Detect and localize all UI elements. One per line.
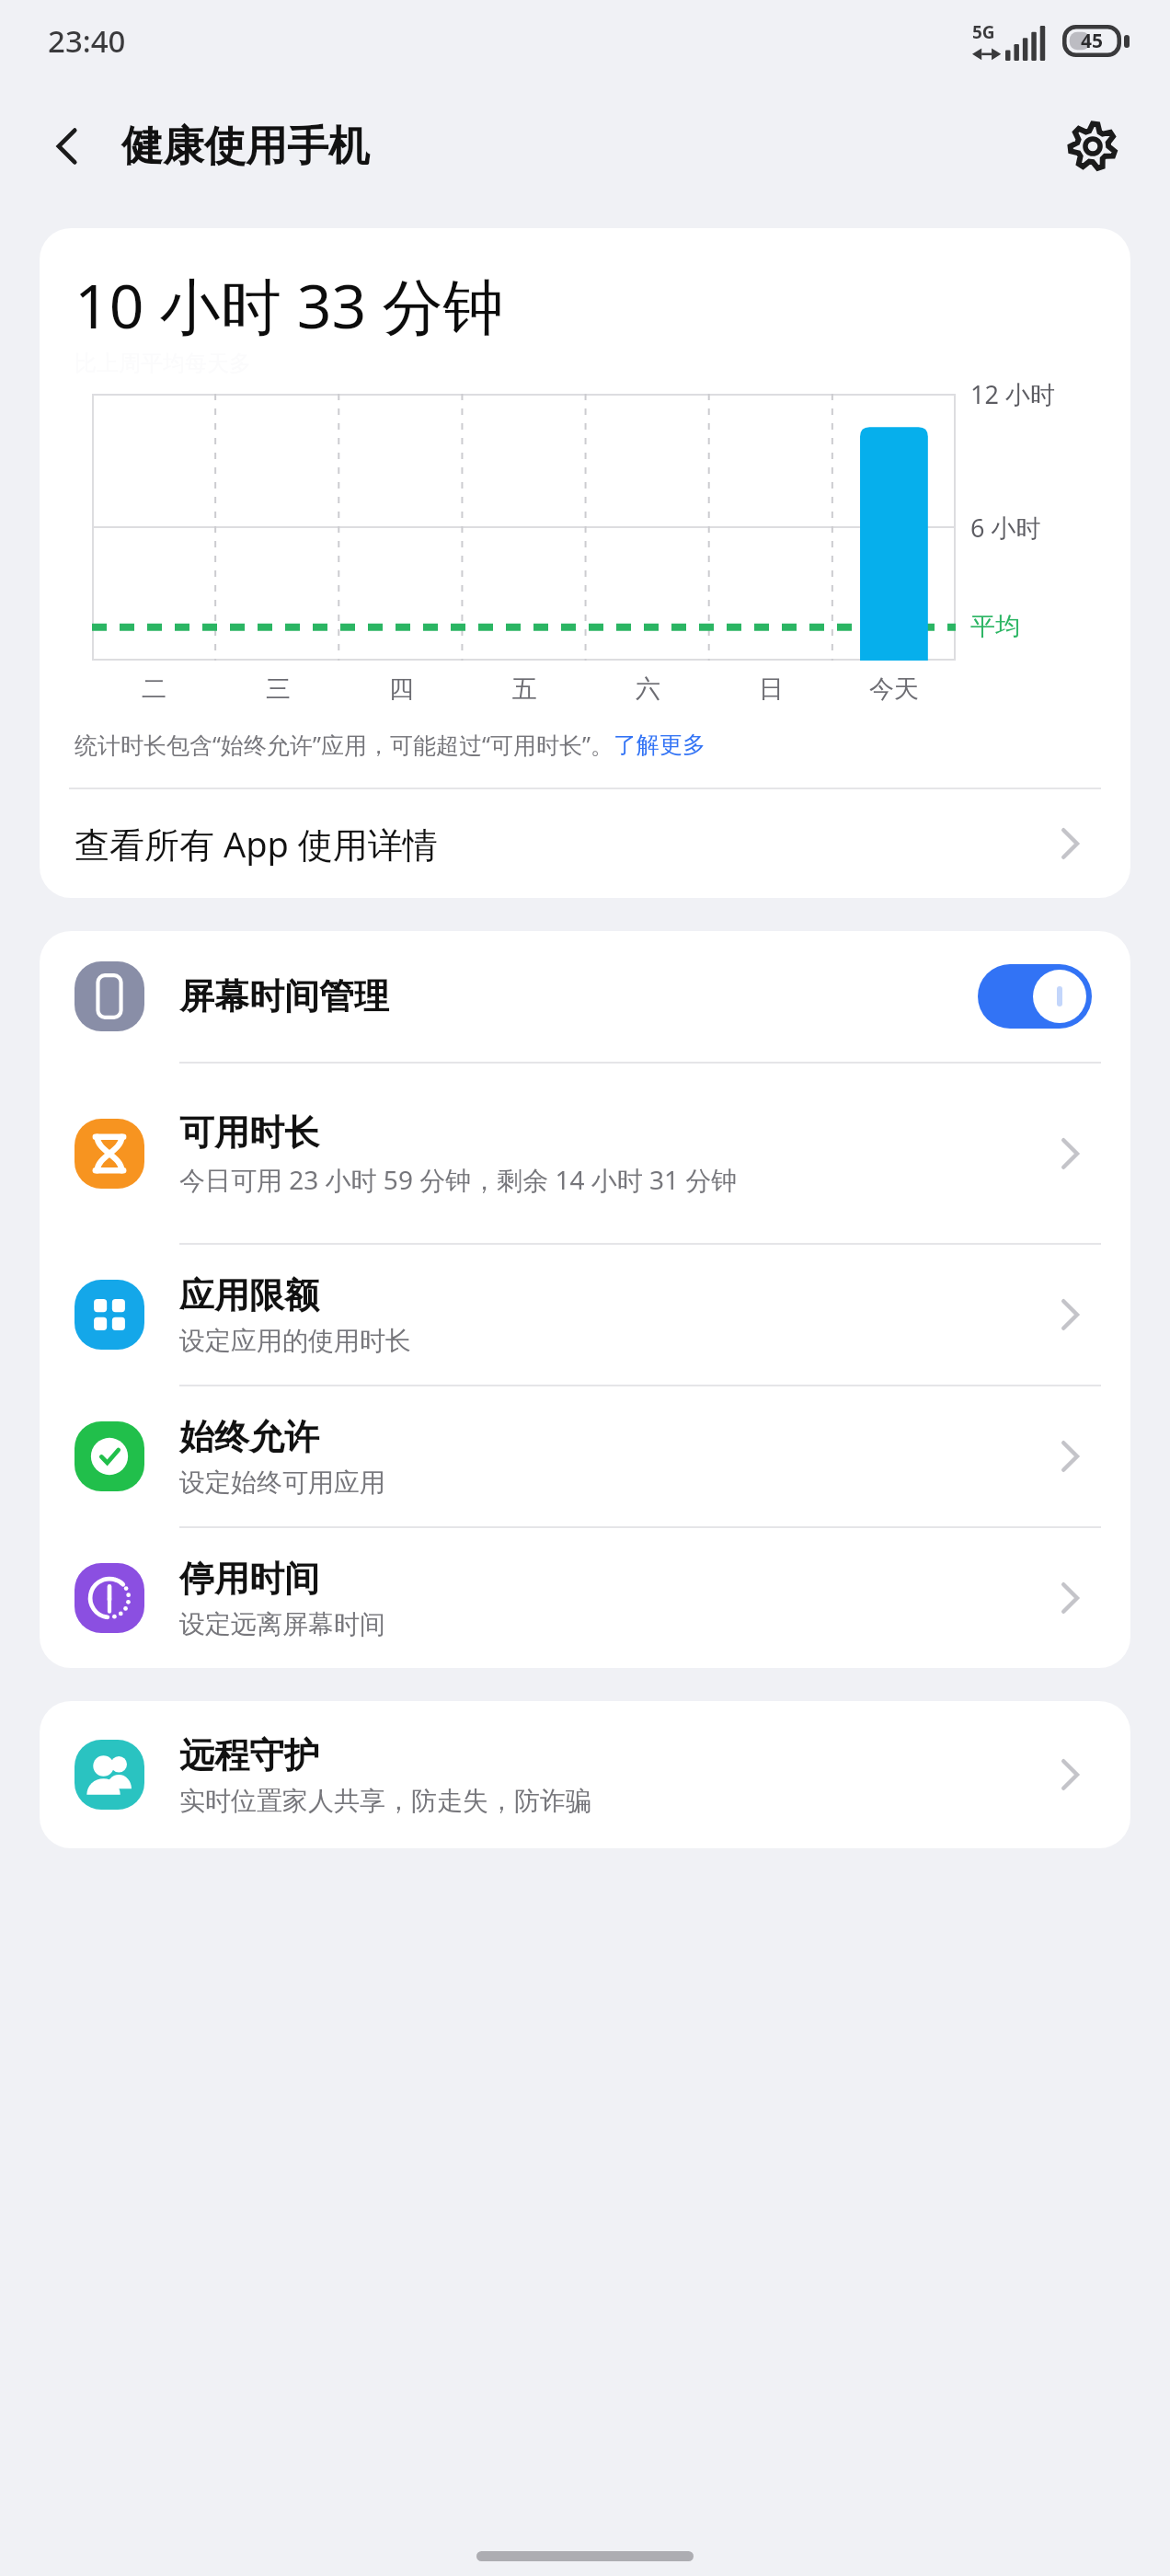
- button[interactable]: 屏幕时间管理开关: [978, 964, 1092, 1029]
- button[interactable]: 屏幕时间管理: [40, 931, 1130, 1062]
- staticText: 45: [1081, 28, 1104, 54]
- staticText: 平均: [970, 611, 1020, 642]
- button[interactable]: 查看所有 App 使用详情: [40, 789, 1130, 898]
- button[interactable]: 始终允许: [40, 1386, 1130, 1526]
- staticText: 屏幕时间管理: [179, 974, 978, 1018]
- staticText: 四: [389, 673, 414, 705]
- button[interactable]: 停用时间: [40, 1528, 1130, 1668]
- staticText: 日: [759, 673, 784, 705]
- staticText: 设定应用的使用时长: [179, 1325, 411, 1357]
- staticText: 设定远离屏幕时间: [179, 1608, 385, 1640]
- staticText: 始终允许: [179, 1415, 319, 1459]
- staticText: 23:40: [48, 20, 126, 62]
- staticText: 停用时间: [179, 1557, 319, 1601]
- staticText: 今日可用 23 小时 59 分钟，剩余 14 小时 31 分钟: [179, 1162, 738, 1197]
- button[interactable]: 了解更多: [614, 730, 705, 759]
- staticText: 健康使用手机: [121, 121, 370, 173]
- staticText: 二: [142, 673, 166, 705]
- staticText: 实时位置家人共享，防走失，防诈骗: [179, 1785, 591, 1817]
- staticText: 统计时长包含“始终允许”应用，可能超过“可用时长”。: [75, 729, 614, 760]
- staticText: 10 小时 33 分钟: [75, 263, 504, 346]
- button[interactable]: 可用时长: [40, 1064, 1130, 1243]
- staticText: 可用时长: [179, 1110, 319, 1155]
- staticText: 12 小时: [970, 377, 1055, 411]
- staticText: 设定始终可用应用: [179, 1466, 385, 1499]
- staticText: 应用限额: [179, 1273, 319, 1317]
- staticText: 6 小时: [970, 511, 1041, 545]
- button[interactable]: 远程守护: [40, 1701, 1130, 1848]
- button[interactable]: Back: [26, 105, 109, 188]
- staticText: 远程守护: [179, 1733, 319, 1777]
- staticText: 六: [636, 673, 660, 705]
- staticText: 5G: [972, 20, 995, 44]
- staticText: 今天: [869, 673, 919, 705]
- staticText: 查看所有 App 使用详情: [75, 820, 1051, 868]
- button[interactable]: Settings: [1052, 106, 1133, 187]
- button[interactable]: 应用限额: [40, 1245, 1130, 1385]
- staticText: 五: [512, 673, 537, 705]
- staticText: 三: [266, 673, 291, 705]
